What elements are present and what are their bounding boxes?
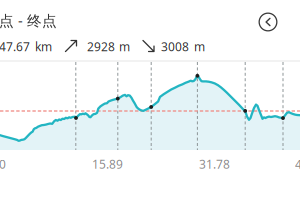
- staticText: 4: [295, 156, 300, 172]
- staticText: 3008: [161, 38, 189, 54]
- staticText: 15.89: [92, 156, 123, 172]
- staticText: m: [119, 38, 130, 54]
- staticText: 31.78: [199, 156, 230, 172]
- staticText: 47.67: [0, 38, 30, 54]
- staticText: m: [194, 38, 205, 54]
- staticText: 0: [0, 156, 6, 172]
- staticText: 2928: [87, 38, 115, 54]
- staticText: 点 - 终点: [0, 11, 57, 30]
- button[interactable]: Back: [255, 9, 281, 35]
- staticText: km: [35, 38, 52, 54]
